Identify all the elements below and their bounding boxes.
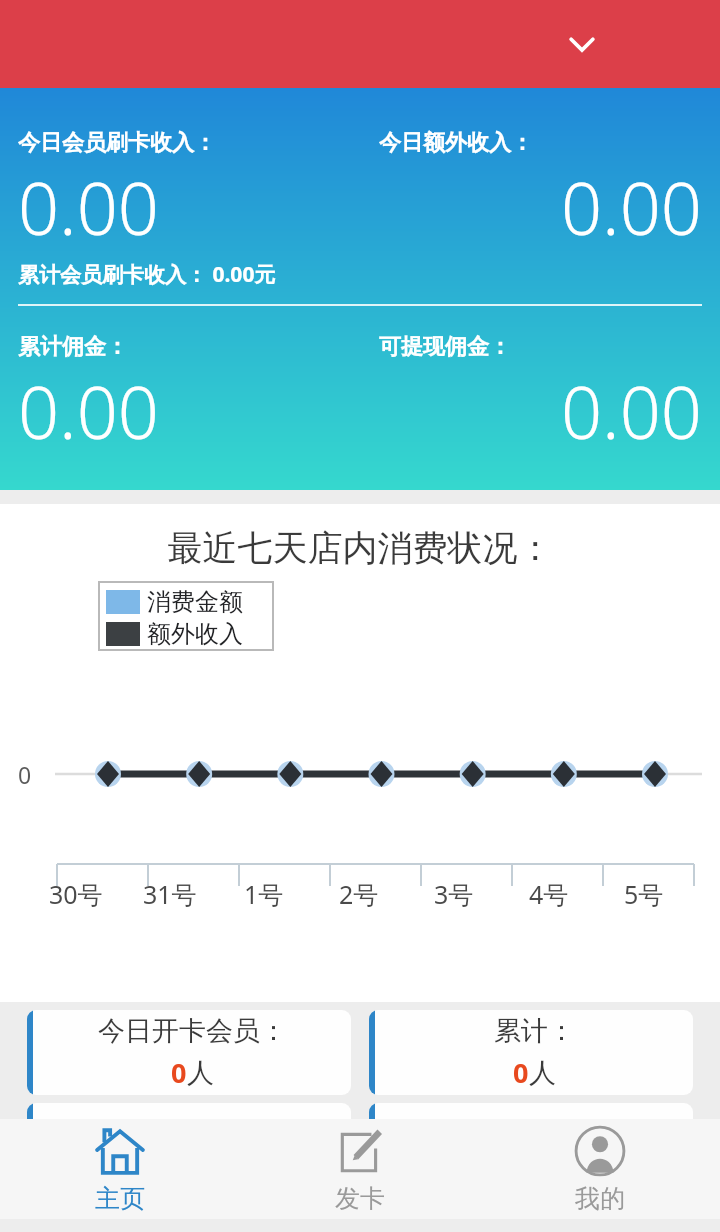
staticText: 我的 bbox=[575, 1183, 625, 1214]
staticText: 今日会员刷卡收入： bbox=[18, 129, 216, 157]
staticText: 今日开卡会员： bbox=[98, 1014, 287, 1048]
staticText: 0.00元 bbox=[207, 260, 276, 289]
staticText: 累计会员刷卡收入： bbox=[18, 262, 207, 288]
staticText: 主页 bbox=[95, 1183, 145, 1214]
staticText: 3号 bbox=[434, 877, 474, 911]
staticText: 31号 bbox=[143, 877, 197, 911]
staticText: 2号 bbox=[339, 877, 379, 911]
button[interactable]: 主页 bbox=[0, 1119, 240, 1219]
staticText: 5号 bbox=[624, 877, 664, 911]
button[interactable]: Collapse bbox=[554, 16, 610, 72]
button[interactable]: 我的 bbox=[480, 1119, 720, 1219]
staticText: 额外收入 bbox=[147, 619, 243, 649]
staticText: 0.00 bbox=[18, 362, 159, 460]
staticText: 人 bbox=[529, 1056, 556, 1090]
staticText: 0.00 bbox=[561, 362, 702, 460]
button[interactable] bbox=[369, 1103, 693, 1119]
staticText: 0.00 bbox=[561, 158, 702, 256]
staticText: 0 bbox=[18, 759, 32, 790]
button[interactable]: 累计： bbox=[369, 1010, 693, 1095]
staticText: 发卡 bbox=[335, 1183, 385, 1214]
staticText: 可提现佣金： bbox=[379, 333, 511, 361]
staticText: 累计： bbox=[494, 1014, 575, 1048]
staticText: 消费金额 bbox=[147, 587, 243, 617]
staticText: 人 bbox=[187, 1056, 214, 1090]
staticText: 4号 bbox=[529, 877, 569, 911]
staticText: 0 bbox=[513, 1054, 529, 1091]
button[interactable] bbox=[27, 1103, 351, 1119]
staticText: 0.00 bbox=[18, 158, 159, 256]
button[interactable]: 今日开卡会员： bbox=[27, 1010, 351, 1095]
staticText: 0 bbox=[171, 1054, 187, 1091]
staticText: 最近七天店内消费状况： bbox=[0, 526, 720, 570]
staticText: 1号 bbox=[244, 877, 284, 911]
staticText: 今日额外收入： bbox=[379, 129, 533, 157]
staticText: 累计佣金： bbox=[18, 333, 128, 361]
staticText: 30号 bbox=[49, 877, 103, 911]
button[interactable]: 发卡 bbox=[240, 1119, 480, 1219]
